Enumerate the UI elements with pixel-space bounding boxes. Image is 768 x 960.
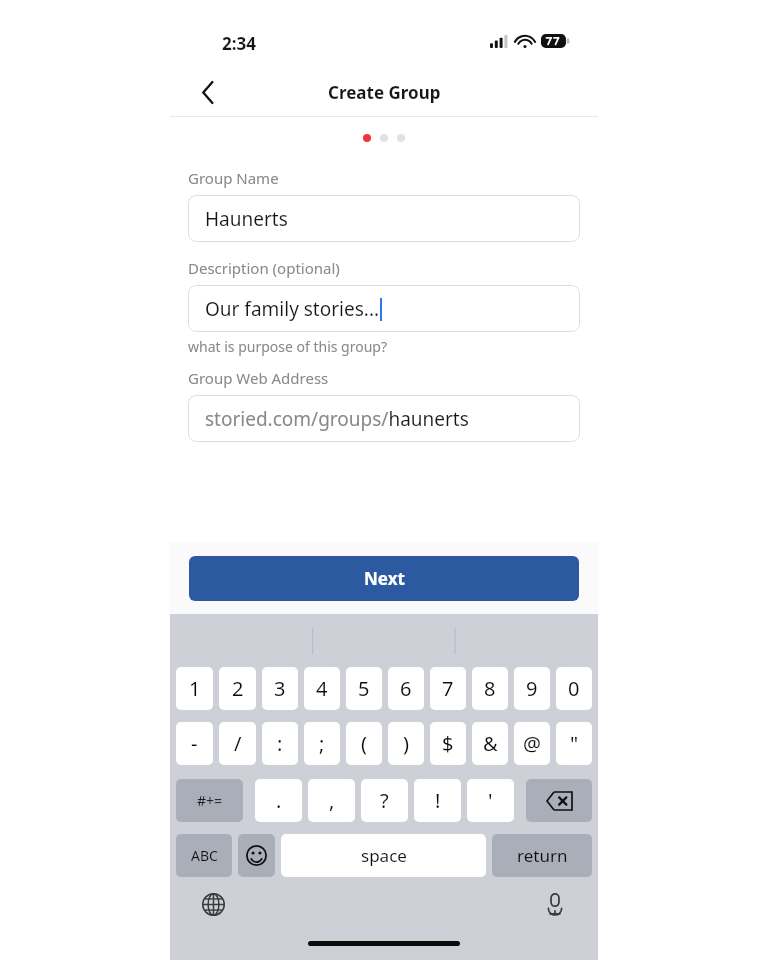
staticText: @ — [523, 730, 541, 757]
staticText: . — [276, 787, 282, 814]
button[interactable]: , — [308, 779, 355, 822]
button[interactable]: & — [472, 722, 508, 765]
button[interactable]: Back — [186, 70, 230, 114]
staticText: 4 — [316, 675, 328, 702]
staticText: Next — [364, 567, 405, 590]
button[interactable]: : — [262, 722, 298, 765]
button[interactable]: 9 — [514, 667, 550, 710]
button[interactable]: - — [176, 722, 213, 765]
staticText: Our family stories... — [205, 296, 380, 322]
staticText: ABC — [191, 846, 218, 865]
button[interactable]: ABC — [176, 834, 232, 877]
button[interactable]: 4 — [304, 667, 340, 710]
button[interactable]: storied.com/groups/haunerts — [188, 395, 580, 442]
button[interactable]: 0 — [556, 667, 592, 710]
staticText: 2 — [232, 675, 244, 702]
staticText: Group Name — [188, 168, 279, 188]
staticText: " — [570, 730, 579, 757]
button[interactable]: Haunerts — [188, 195, 580, 242]
staticText: storied.com/groups/haunerts — [205, 406, 469, 432]
staticText: 1 — [189, 675, 201, 702]
staticText: 3 — [274, 675, 286, 702]
button[interactable]: 5 — [346, 667, 382, 710]
staticText: #+= — [197, 791, 223, 810]
button[interactable]: @ — [514, 722, 550, 765]
button[interactable]: 2 — [219, 667, 256, 710]
staticText: ) — [403, 730, 409, 757]
button[interactable]: Our family stories... — [188, 285, 580, 332]
button[interactable]: space — [281, 834, 486, 877]
button[interactable]: $ — [430, 722, 466, 765]
button[interactable]: ; — [304, 722, 340, 765]
staticText: 9 — [526, 675, 538, 702]
staticText: & — [483, 730, 498, 757]
staticText: : — [277, 730, 283, 757]
staticText: 8 — [484, 675, 496, 702]
staticText: 6 — [400, 675, 412, 702]
staticText: / — [234, 730, 242, 757]
staticText: return — [517, 844, 568, 867]
button[interactable]: Backspace — [526, 779, 592, 822]
button[interactable]: ? — [361, 779, 408, 822]
staticText: ' — [488, 787, 493, 814]
staticText: Create Group — [328, 81, 441, 104]
button[interactable]: #+= — [176, 779, 243, 822]
button[interactable]: return — [492, 834, 592, 877]
button[interactable]: 6 — [388, 667, 424, 710]
button[interactable]: ) — [388, 722, 424, 765]
button[interactable]: 3 — [262, 667, 298, 710]
staticText: 7 — [442, 675, 454, 702]
button[interactable]: . — [255, 779, 302, 822]
staticText: ? — [380, 787, 389, 814]
staticText: ! — [435, 787, 441, 814]
button[interactable]: 8 — [472, 667, 508, 710]
staticText: ; — [319, 730, 325, 757]
staticText: space — [361, 844, 407, 867]
button[interactable]: ! — [414, 779, 461, 822]
staticText: Description (optional) — [188, 258, 340, 278]
button[interactable]: Dictate — [536, 885, 574, 923]
staticText: 5 — [358, 675, 370, 702]
button[interactable]: ( — [346, 722, 382, 765]
staticText: Group Web Address — [188, 368, 329, 388]
button[interactable]: " — [556, 722, 592, 765]
staticText: $ — [442, 730, 454, 757]
button[interactable]: ' — [467, 779, 514, 822]
button[interactable]: 7 — [430, 667, 466, 710]
staticText: - — [191, 730, 198, 757]
button[interactable]: / — [219, 722, 256, 765]
staticText: 0 — [568, 675, 580, 702]
button[interactable]: 1 — [176, 667, 213, 710]
button[interactable]: Emoji — [238, 834, 275, 877]
button[interactable]: Next — [189, 556, 579, 601]
button[interactable]: Change keyboard — [194, 885, 232, 923]
staticText: , — [329, 787, 335, 814]
staticText: ( — [361, 730, 367, 757]
staticText: what is purpose of this group? — [188, 337, 388, 356]
staticText: 2:34 — [222, 32, 256, 55]
staticText: Haunerts — [205, 206, 288, 232]
